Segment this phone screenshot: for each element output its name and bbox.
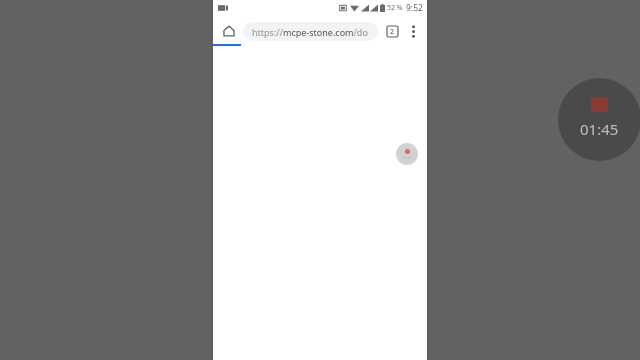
button[interactable]: https://mcpe-stone.com/do xyxy=(243,22,378,41)
button[interactable]: Stop recording xyxy=(396,143,418,165)
button[interactable]: Home xyxy=(218,20,240,42)
staticText: 9:52 xyxy=(406,2,423,14)
staticText: 01:45 xyxy=(580,119,619,139)
staticText: 2 xyxy=(390,27,395,37)
staticText: 01:45 xyxy=(402,155,413,160)
button[interactable]: Tabs xyxy=(382,21,402,41)
button[interactable]: More options xyxy=(403,21,423,41)
staticText: 52 % xyxy=(387,3,403,13)
button[interactable]: Stop recording xyxy=(558,78,640,161)
staticText: https://mcpe-stone.com/do xyxy=(252,26,368,38)
